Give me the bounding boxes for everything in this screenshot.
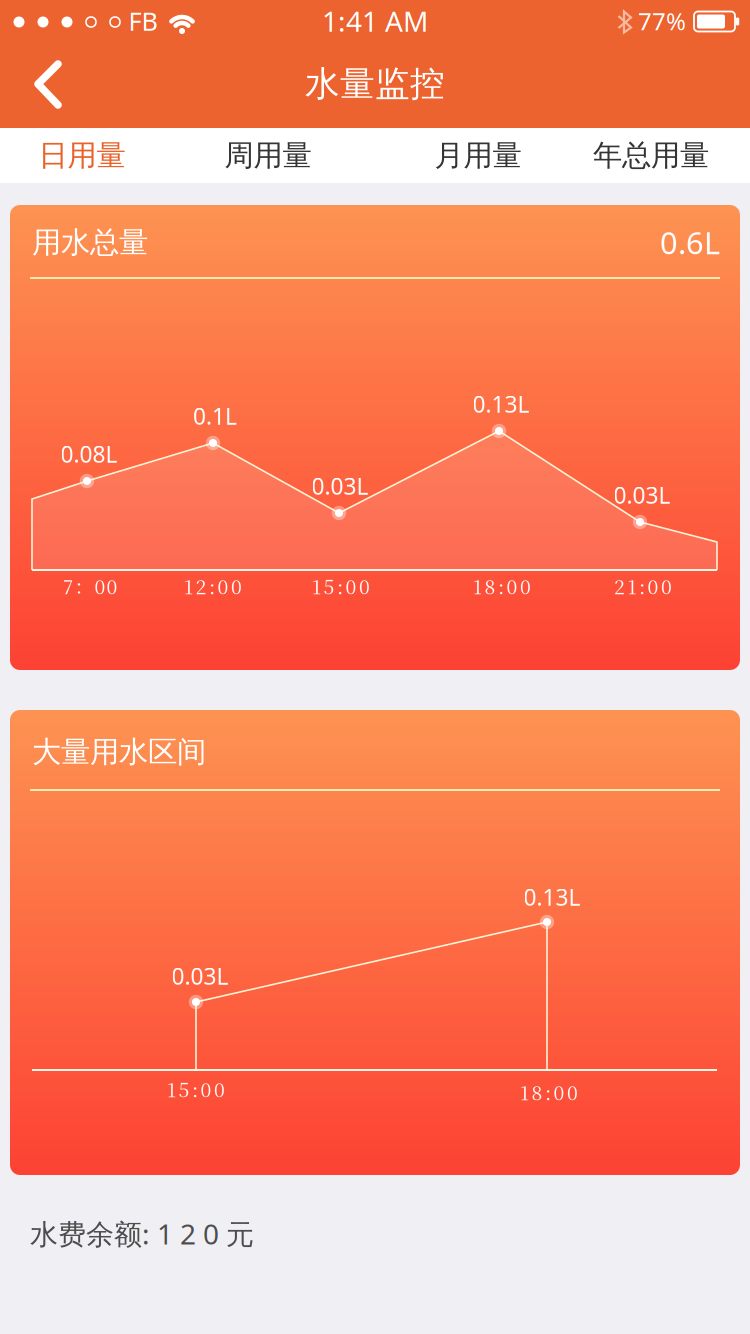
staticText: 大量用水区间 [32,734,206,770]
staticText: 18:00 [520,1078,578,1106]
staticText: 12:00 [184,572,242,600]
staticText: 0.08L [60,439,117,469]
staticText: 月用量 [434,137,521,173]
button[interactable]: 年总用量 [568,128,734,183]
staticText: 水量监控 [305,63,445,105]
button[interactable]: 日用量 [0,128,165,183]
staticText: 水费余额: 1 2 0 元 [30,1215,254,1252]
staticText: 18:00 [473,572,531,600]
staticText: 15:00 [312,572,370,600]
staticText: 用水总量 [32,224,148,260]
button[interactable]: 周用量 [185,128,351,183]
staticText: 21:00 [614,572,672,600]
staticText: 0.6L [660,222,720,263]
staticText: 1:41 AM [322,2,428,40]
staticText: 7：00 [62,572,117,600]
staticText: 0.1L [193,401,237,431]
staticText: 0.03L [171,961,228,991]
staticText: 年总用量 [593,137,709,173]
staticText: 15:00 [167,1075,225,1103]
staticText: 周用量 [224,137,311,173]
staticText: 0.03L [613,480,670,510]
staticText: 0.13L [472,389,529,419]
staticText: 77% [638,5,686,37]
button[interactable]: 月用量 [395,128,561,183]
staticText: 0.03L [311,471,368,501]
staticText: 0.13L [523,882,580,912]
button[interactable]: Back [0,40,96,128]
staticText: 日用量 [38,137,125,173]
staticText: FB [128,4,157,38]
